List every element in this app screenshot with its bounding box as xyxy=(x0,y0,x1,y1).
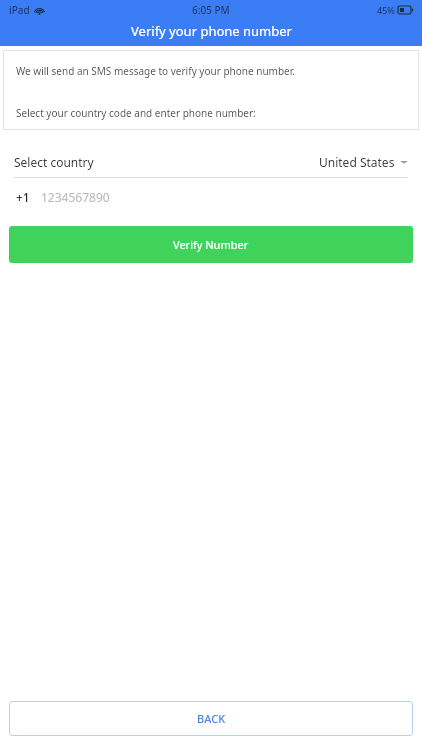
button[interactable]: BACK xyxy=(9,701,413,736)
staticText: 45% xyxy=(377,4,395,16)
button[interactable]: Verify Number xyxy=(9,226,413,263)
staticText: Select your country code and enter phone… xyxy=(16,106,256,120)
staticText: Select country xyxy=(14,154,94,170)
other: Wi-Fi xyxy=(34,5,45,16)
staticText: Verify your phone number xyxy=(131,22,292,40)
button[interactable]: +1 xyxy=(0,178,422,216)
staticText: BACK xyxy=(197,711,226,726)
staticText: +1 xyxy=(16,189,30,205)
other: Battery 45 percent xyxy=(398,6,413,14)
staticText: Verify Number xyxy=(173,237,249,252)
staticText: 6:05 PM xyxy=(192,3,230,17)
staticText: We will send an SMS message to verify yo… xyxy=(16,64,295,78)
staticText: iPad xyxy=(9,3,30,17)
button[interactable]: Select country xyxy=(0,147,422,177)
staticText: United States xyxy=(319,154,395,170)
staticText: 1234567890 xyxy=(41,189,110,205)
